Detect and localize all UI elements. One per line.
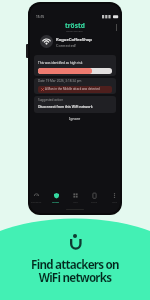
button[interactable]: Device — [87, 193, 101, 205]
button[interactable] — [40, 35, 53, 48]
button[interactable] — [34, 78, 116, 94]
staticText: Disconnect from this WiFi network — [38, 104, 93, 109]
staticText: Date 19 Mar 2026, 3:18:34 pm — [38, 79, 82, 83]
staticText: 15:15 — [36, 15, 45, 19]
button[interactable] — [34, 96, 116, 113]
staticText: Dashboard — [31, 201, 42, 204]
staticText: This was identified as high risk — [38, 61, 83, 65]
staticText: Threats — [52, 201, 60, 204]
button[interactable]: Find attackers on WiFi networks — [0, 257, 150, 286]
button[interactable]: More — [107, 193, 121, 205]
staticText: Suggested action — [38, 98, 64, 102]
button[interactable]: Apps — [68, 193, 82, 205]
staticText: Connected! — [56, 43, 77, 48]
button[interactable]: Threats — [49, 193, 63, 205]
button[interactable] — [34, 55, 116, 76]
button[interactable]: Ignore — [0, 116, 150, 121]
staticText: MOBILE SECURITY — [66, 30, 84, 33]
button[interactable]: Dashboard — [29, 193, 43, 205]
staticText: RogueCoffeeShop — [56, 37, 92, 43]
staticText: Ignore — [69, 116, 81, 121]
staticText: Device — [91, 201, 98, 204]
staticText: tröstd — [65, 21, 85, 30]
staticText: More — [112, 201, 117, 204]
staticText: Find attackers on WiFi networks — [0, 257, 150, 286]
staticText: A Man in the Middle attack was detected — [45, 87, 100, 91]
staticText: Apps — [73, 201, 78, 204]
